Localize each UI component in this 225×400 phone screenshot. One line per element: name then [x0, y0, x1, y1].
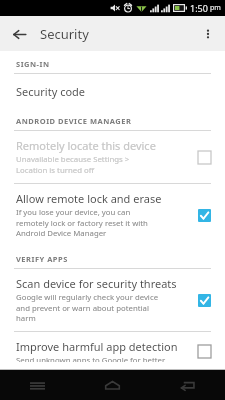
- staticText: Security: [40, 25, 89, 43]
- button[interactable]: Toggle: [193, 340, 215, 362]
- staticText: ANDROID DEVICE MANAGER: [16, 116, 132, 126]
- staticText: Unavailable because Settings > Location …: [16, 154, 130, 176]
- staticText: Scan device for security threats: [16, 276, 177, 291]
- staticText: Allow remote lock and erase: [16, 191, 162, 206]
- staticText: VERIFY APPS: [16, 254, 68, 264]
- button[interactable]: Back: [150, 370, 225, 400]
- staticText: Security code: [16, 84, 86, 99]
- button[interactable]: Improve harmful app detection: [0, 332, 225, 369]
- button[interactable]: Home: [75, 370, 150, 400]
- staticText: Improve harmful app detection: [16, 339, 178, 354]
- button[interactable]: Security code: [0, 74, 225, 108]
- button[interactable]: Toggle: [193, 204, 215, 226]
- button[interactable]: Back: [6, 21, 32, 47]
- button[interactable]: Allow remote lock and erase: [0, 184, 225, 246]
- staticText: Send unknown apps to Google for better d…: [16, 355, 166, 362]
- staticText: Remotely locate this device: [16, 138, 156, 153]
- staticText: pm: [210, 3, 221, 13]
- button[interactable]: Scan device for security threats: [0, 269, 225, 331]
- staticText: SIGN-IN: [16, 59, 50, 69]
- button[interactable]: Remotely locate this device: [0, 131, 225, 183]
- button[interactable]: Toggle: [193, 289, 215, 311]
- button[interactable]: More options: [195, 21, 221, 47]
- button[interactable]: Recents: [0, 370, 75, 400]
- staticText: 1:50: [190, 2, 208, 14]
- staticText: Google will regularly check your device …: [16, 292, 159, 324]
- button[interactable]: Toggle: [193, 146, 215, 168]
- staticText: If you lose your device, you can remotel…: [16, 207, 148, 239]
